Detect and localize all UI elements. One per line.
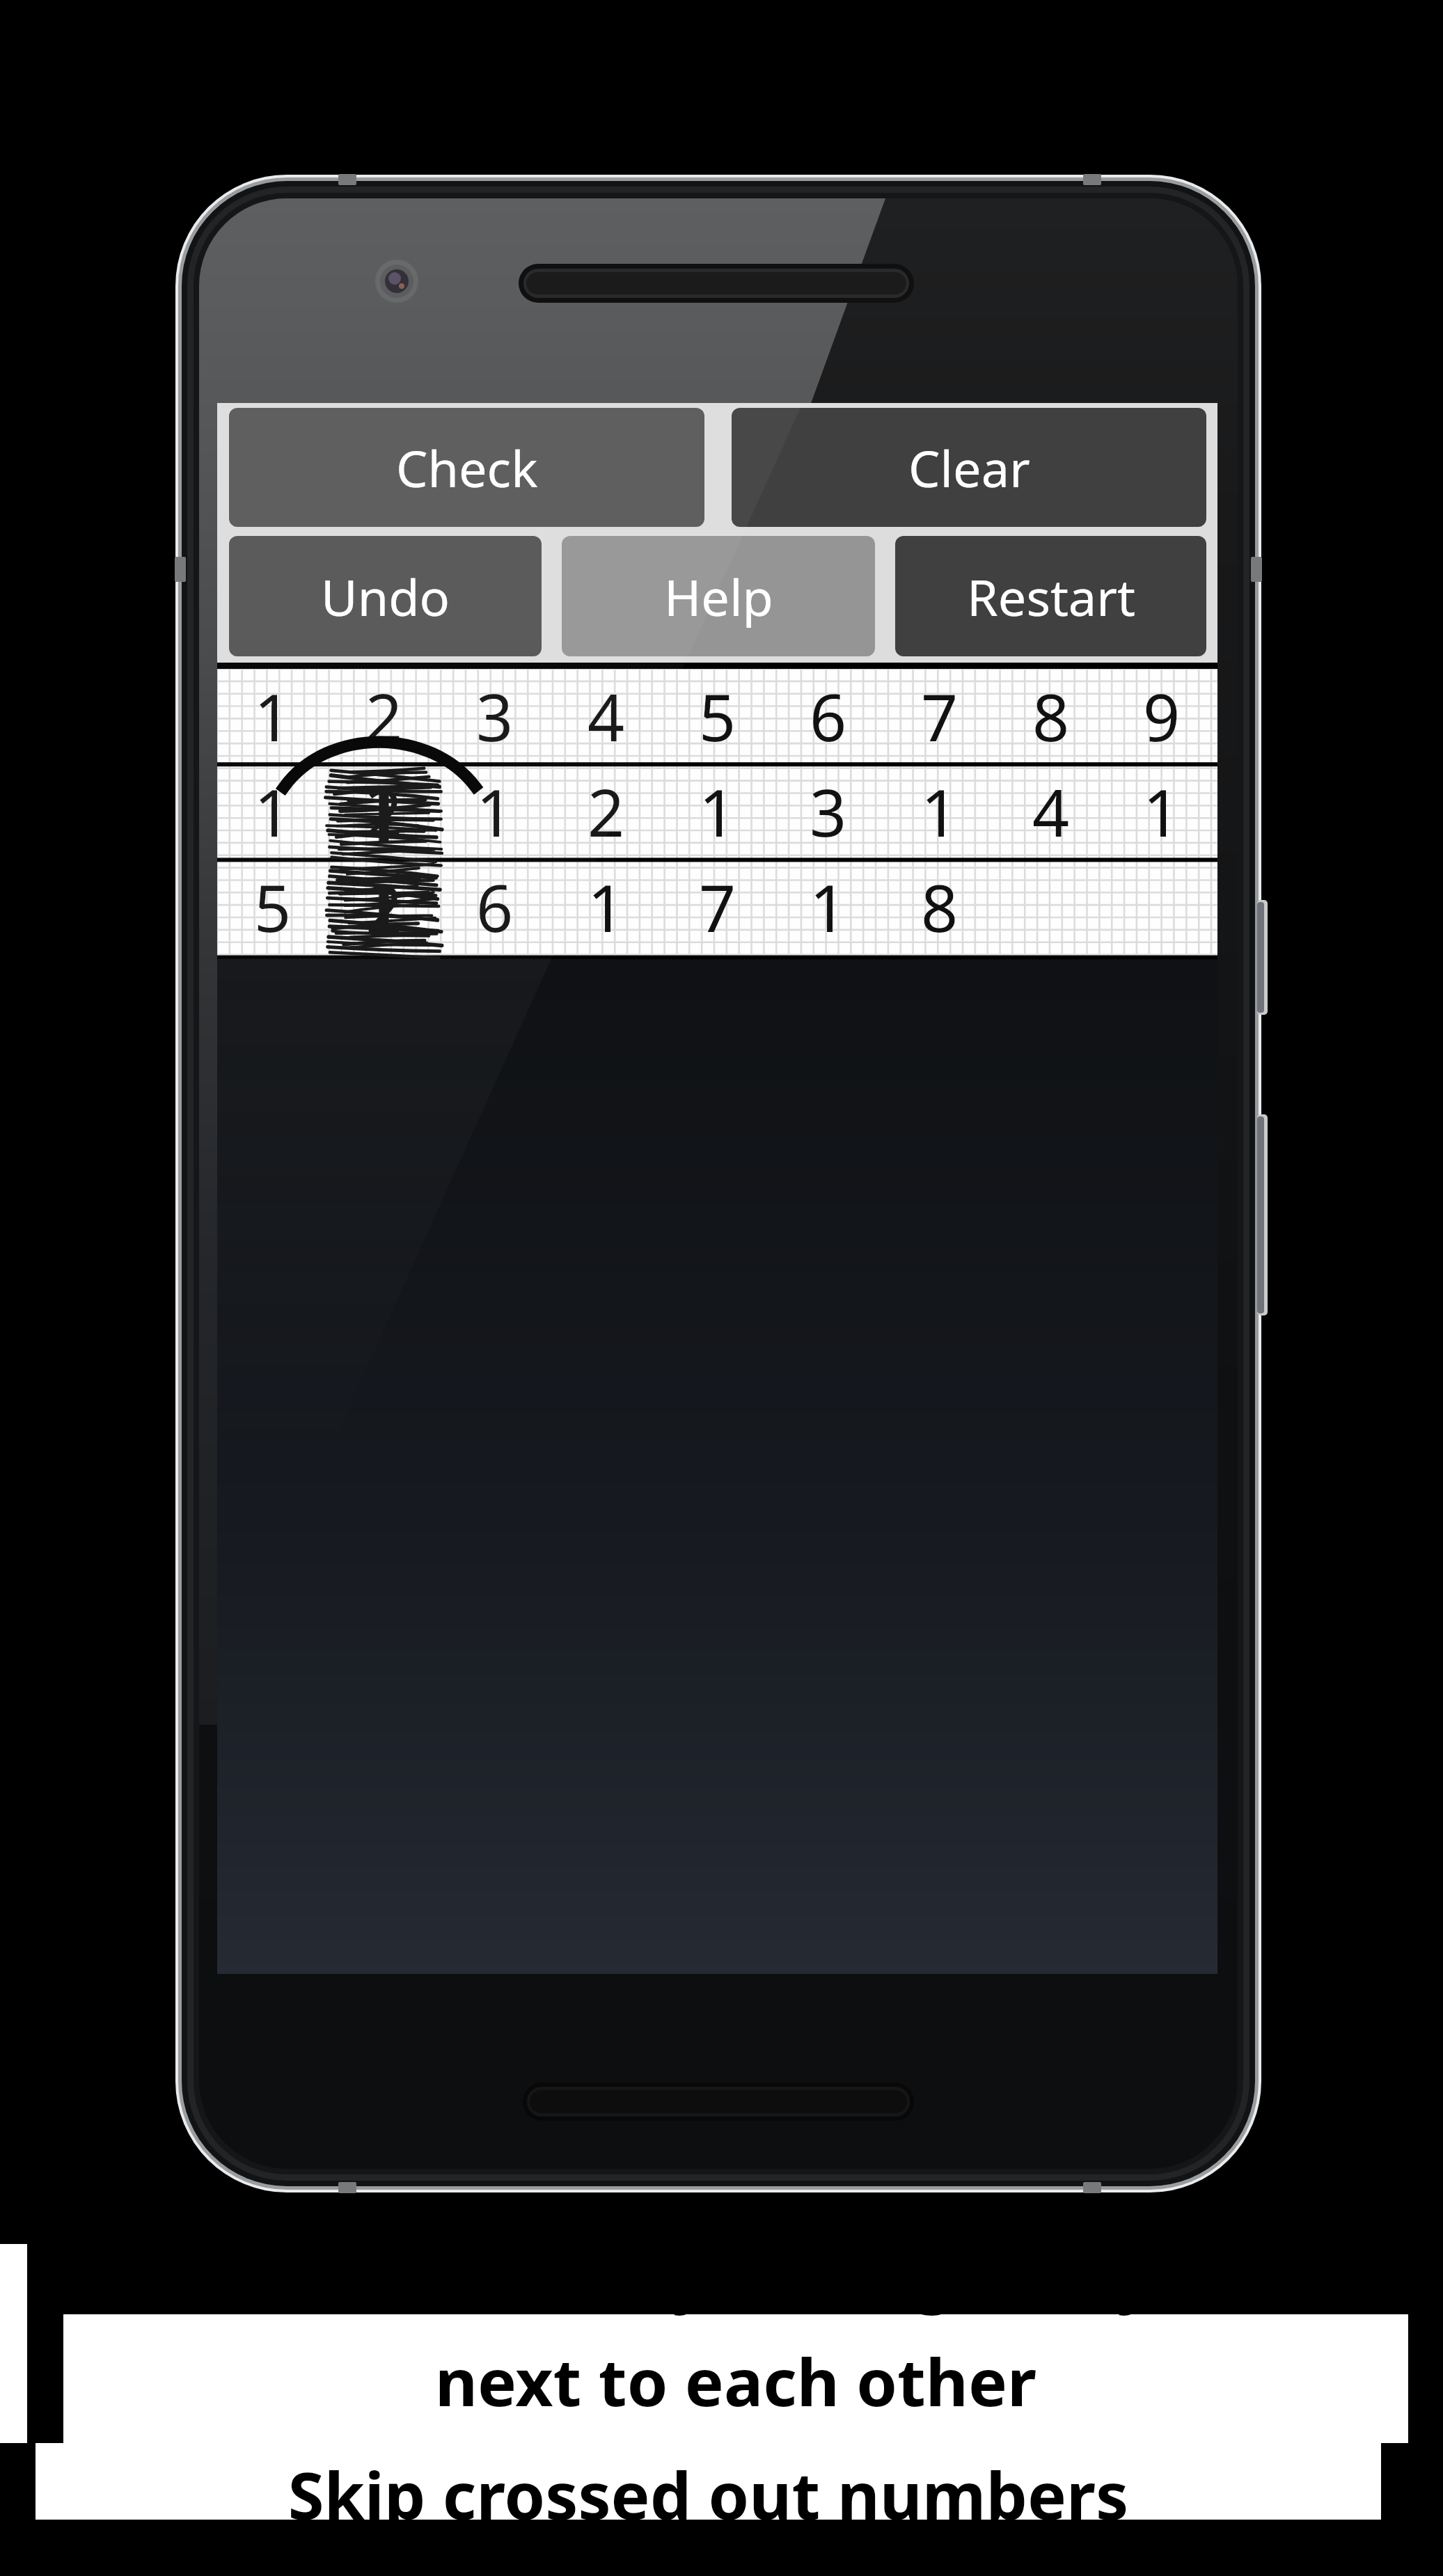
staticText: 3 [476,672,514,761]
staticText: 7 [921,672,959,761]
staticText: Check [396,434,538,502]
staticText: 6 [476,863,514,951]
staticText: 2 [365,863,403,951]
button[interactable]: Help [562,536,875,656]
staticText: 7 [699,863,736,951]
staticText: 1 [921,768,959,856]
staticText: 4 [588,672,625,761]
staticText: Clear [908,434,1030,502]
staticText: Skip crossed out numbers [36,2450,1381,2576]
button[interactable]: Skip crossed out numbers [36,2443,1381,2520]
staticText: Undo [321,562,450,631]
staticText: 2 [365,768,403,856]
staticText: 1 [254,672,292,761]
staticText: 5 [699,672,736,761]
staticText: Help [664,562,773,631]
staticText: 4 [1032,768,1070,856]
staticText: 2 [365,672,403,761]
button[interactable]: horizontally or diagonally next to each … [63,2314,1408,2443]
staticText: 9 [1143,672,1181,761]
staticText: 1 [588,863,625,951]
staticText: 1 [254,768,292,856]
button[interactable]: Restart [895,536,1206,656]
staticText: horizontally or diagonally next to each … [63,2231,1408,2509]
button[interactable]: Check [229,408,704,527]
button[interactable]: Clear [732,408,1206,527]
staticText: Restart [967,562,1135,631]
staticText: 1 [476,768,514,856]
staticText: 1 [810,863,847,951]
staticText: 8 [1032,672,1070,761]
staticText: 1 [1143,768,1181,856]
staticText: 1 [699,768,736,856]
staticText: 3 [810,768,847,856]
staticText: 2 [588,768,625,856]
button[interactable]: Undo [229,536,542,656]
staticText: 5 [254,863,292,951]
staticText: 8 [921,863,959,951]
staticText: 6 [810,672,847,761]
